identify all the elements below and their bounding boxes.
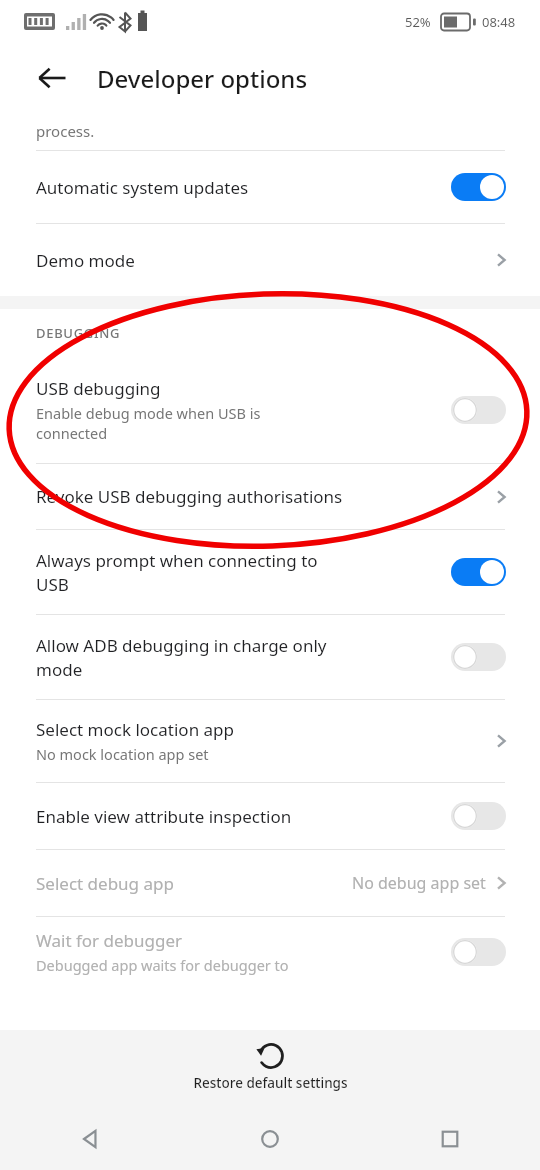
button[interactable]: Off [451,643,506,671]
staticText: process. [36,121,95,141]
button[interactable]: On [451,173,506,201]
staticText: 52% [405,13,431,31]
button[interactable]: Demo mode [0,224,540,296]
staticText: No debug app set [352,872,486,894]
staticText: Demo mode [36,249,135,272]
staticText: Select debug app [36,872,174,895]
button[interactable]: Off [451,938,506,966]
staticText: Restore default settings [193,1074,348,1092]
staticText: Enable view attribute inspection [36,805,292,828]
button[interactable]: Automatic system updates [0,151,540,223]
button[interactable]: Back [24,50,80,106]
button[interactable]: Allow ADB debugging in charge only mode [0,615,540,699]
button[interactable]: Off [451,396,506,424]
button[interactable]: Back [0,1108,180,1170]
button[interactable]: Restore default settings [0,1030,540,1108]
staticText: USB debugging [36,377,161,400]
staticText: No mock location app set [36,744,209,764]
button[interactable]: Recents [360,1108,540,1170]
button[interactable]: On [451,558,506,586]
button[interactable]: Select mock location app [0,700,540,782]
staticText: Automatic system updates [36,176,249,199]
button[interactable]: Enable view attribute inspection [0,783,540,849]
button[interactable]: Off [451,802,506,830]
staticText: DEBUGGING [36,324,121,342]
button[interactable]: Revoke USB debugging authorisations [0,464,540,529]
staticText: Allow ADB debugging in charge only mode [36,634,327,681]
staticText: Developer options [97,62,308,95]
staticText: Revoke USB debugging authorisations [36,485,343,508]
staticText: Select mock location app [36,718,234,741]
button[interactable]: USB debugging [0,357,540,463]
staticText: Debugged app waits for debugger to [36,955,289,975]
button[interactable]: Always prompt when connecting to USB [0,530,540,614]
staticText: Wait for debugger [36,929,183,952]
button[interactable]: Home [180,1108,360,1170]
staticText: 08:48 [482,13,516,31]
staticText: Always prompt when connecting to USB [36,549,318,596]
staticText: Enable debug mode when USB is connected [36,403,261,444]
